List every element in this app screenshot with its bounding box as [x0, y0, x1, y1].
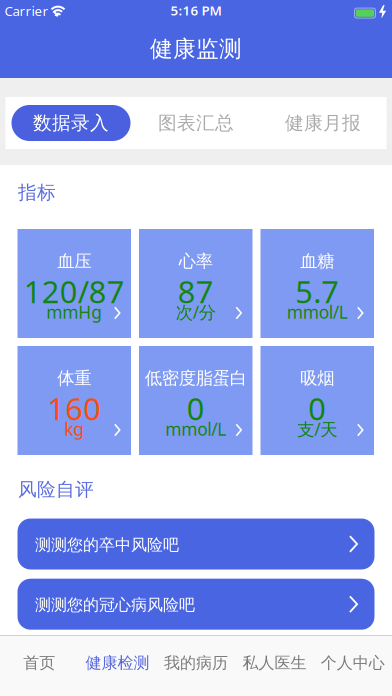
- staticText: 低密度脂蛋白: [145, 367, 247, 389]
- staticText: 5.7: [295, 271, 339, 312]
- staticText: 风险自评: [18, 478, 94, 501]
- button[interactable]: 图表汇总: [132, 97, 259, 149]
- button[interactable]: 体重: [17, 346, 131, 455]
- button[interactable]: 心率: [139, 229, 252, 338]
- staticText: 我的病历: [164, 653, 228, 673]
- button[interactable]: 个人中心: [314, 636, 392, 690]
- staticText: 图表汇总: [158, 111, 234, 134]
- staticText: mmol/L: [165, 417, 226, 440]
- staticText: 吸烟: [300, 367, 334, 389]
- button[interactable]: 健康检测: [78, 636, 157, 690]
- button[interactable]: 数据录入: [11, 105, 130, 141]
- staticText: 次/分: [176, 300, 216, 323]
- button[interactable]: 我的病历: [157, 636, 235, 690]
- staticText: 指标: [18, 181, 56, 204]
- staticText: 健康检测: [86, 653, 150, 673]
- staticText: 血压: [57, 250, 91, 272]
- staticText: 数据录入: [33, 111, 109, 134]
- staticText: 血糖: [300, 250, 334, 272]
- staticText: 健康月报: [285, 111, 361, 134]
- staticText: 支/天: [297, 417, 337, 440]
- button[interactable]: 首页: [0, 636, 78, 690]
- staticText: 体重: [57, 367, 91, 389]
- staticText: 个人中心: [321, 653, 385, 673]
- staticText: Carrier: [4, 2, 48, 20]
- staticText: 5:16 PM: [170, 1, 221, 19]
- staticText: mmHg: [46, 300, 102, 323]
- button[interactable]: 测测您的卒中风险吧: [17, 518, 374, 569]
- button[interactable]: 低密度脂蛋白: [139, 346, 252, 455]
- staticText: kg: [64, 417, 84, 440]
- button[interactable]: 吸烟: [260, 346, 374, 455]
- staticText: 测测您的卒中风险吧: [35, 535, 179, 555]
- button[interactable]: 私人医生: [235, 636, 314, 690]
- button[interactable]: 测测您的冠心病风险吧: [17, 579, 374, 630]
- staticText: 私人医生: [242, 653, 306, 673]
- staticText: 0: [187, 388, 205, 429]
- button[interactable]: 健康月报: [259, 97, 386, 149]
- staticText: 测测您的冠心病风险吧: [35, 595, 195, 615]
- staticText: 0: [308, 388, 326, 429]
- staticText: 首页: [23, 653, 55, 673]
- staticText: 160: [47, 388, 101, 429]
- staticText: 心率: [179, 250, 213, 272]
- staticText: 120/87: [24, 271, 125, 312]
- staticText: mmol/L: [287, 300, 348, 323]
- button[interactable]: 血压: [17, 229, 131, 338]
- button[interactable]: 血糖: [260, 229, 374, 338]
- staticText: 健康监测: [150, 35, 242, 63]
- staticText: 87: [178, 271, 214, 312]
